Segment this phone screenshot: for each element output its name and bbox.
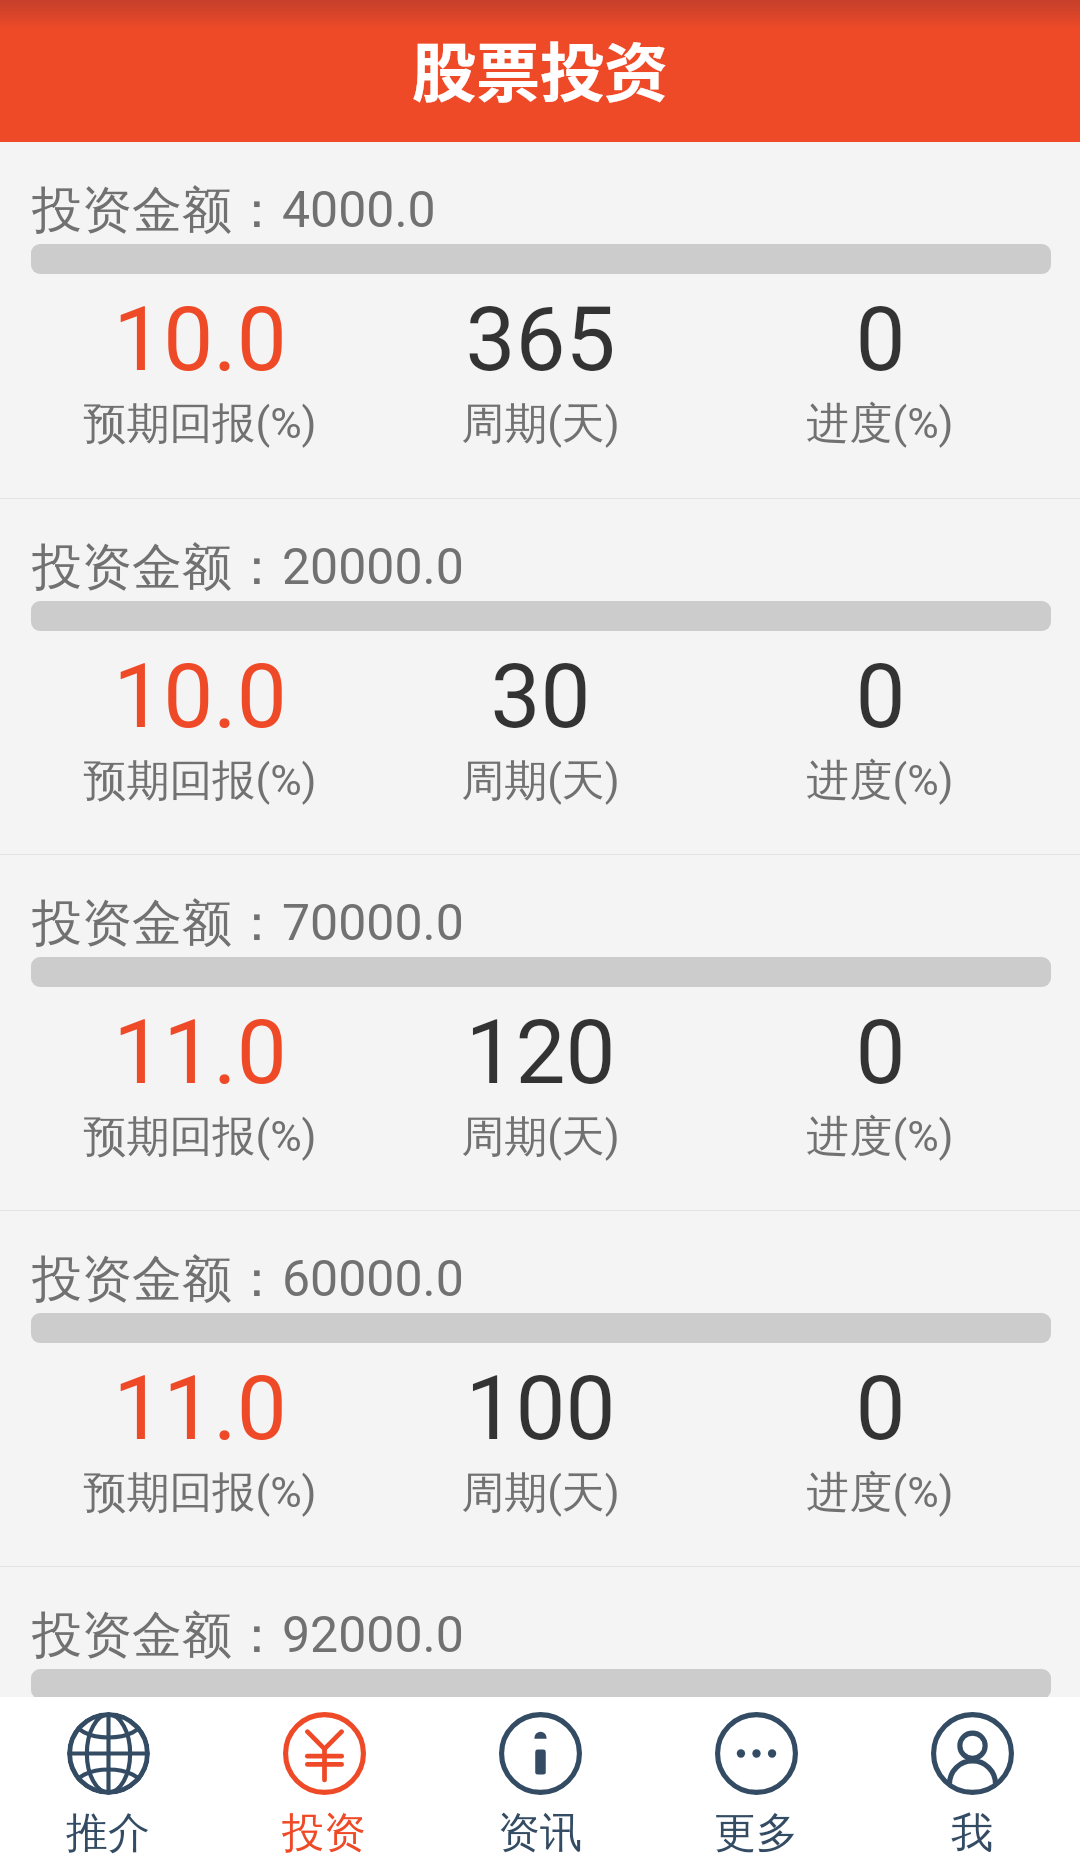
staticText: 投资金额：60000.0 [32, 1248, 464, 1311]
button[interactable]: 投资金额：4000.0 [0, 142, 1080, 498]
staticText: 进度(%) [806, 754, 954, 808]
staticText: 365 [465, 287, 616, 391]
staticText: 11.0 [113, 1356, 287, 1460]
staticText: 0 [855, 1000, 906, 1104]
staticText: 预期回报(%) [83, 397, 317, 451]
other: 推介 [67, 1712, 150, 1795]
staticText: 周期(天) [461, 1110, 620, 1164]
staticText: 投资金额：4000.0 [32, 179, 436, 242]
staticText: 预期回报(%) [83, 1466, 317, 1520]
staticText: 我 [951, 1807, 993, 1860]
staticText: 推介 [66, 1807, 150, 1860]
other: 我 [931, 1712, 1014, 1795]
staticText: 11.0 [113, 1000, 287, 1104]
staticText: 周期(天) [461, 1466, 620, 1520]
button[interactable]: 投资金额：70000.0 [0, 855, 1080, 1210]
staticText: 120 [465, 1000, 616, 1104]
staticText: 预期回报(%) [83, 754, 317, 808]
staticText: 资讯 [498, 1807, 582, 1860]
staticText: 进度(%) [806, 1110, 954, 1164]
staticText: 0 [855, 1356, 906, 1460]
staticText: 进度(%) [806, 397, 954, 451]
staticText: 更多 [714, 1807, 798, 1860]
staticText: 30 [490, 644, 591, 748]
button[interactable]: 资讯 [432, 1697, 648, 1860]
staticText: 进度(%) [806, 1822, 954, 1860]
other: 更多 [715, 1712, 798, 1795]
staticText: 12.0 [113, 1712, 287, 1816]
staticText: 100 [465, 1356, 616, 1460]
staticText: 周期(天) [461, 1822, 620, 1860]
button[interactable]: 投资金额：20000.0 [0, 499, 1080, 854]
button[interactable]: 推介 [0, 1697, 216, 1860]
staticText: 10.0 [113, 644, 287, 748]
staticText: 预期回报(%) [83, 1110, 317, 1164]
staticText: 股票投资 [412, 22, 668, 115]
staticText: 预期回报(%) [83, 1822, 317, 1860]
other: 资讯 [499, 1712, 582, 1795]
staticText: 10.0 [113, 287, 287, 391]
staticText: 投资金额：92000.0 [32, 1604, 464, 1667]
button[interactable]: 投资金额：92000.0 [0, 1567, 1080, 1860]
staticText: 0 [855, 644, 906, 748]
staticText: 投资金额：20000.0 [32, 536, 464, 599]
button[interactable]: 我 [864, 1697, 1080, 1860]
staticText: 0 [855, 287, 906, 391]
button[interactable]: 投资金额：60000.0 [0, 1211, 1080, 1566]
staticText: 进度(%) [806, 1466, 954, 1520]
button[interactable]: 更多 [648, 1697, 864, 1860]
staticText: 周期(天) [461, 754, 620, 808]
button[interactable]: 投资 [216, 1697, 432, 1860]
other: 投资 [283, 1712, 366, 1795]
staticText: 投资 [282, 1807, 366, 1860]
staticText: 周期(天) [461, 397, 620, 451]
staticText: 200 [465, 1712, 616, 1816]
staticText: 投资金额：70000.0 [32, 892, 464, 955]
